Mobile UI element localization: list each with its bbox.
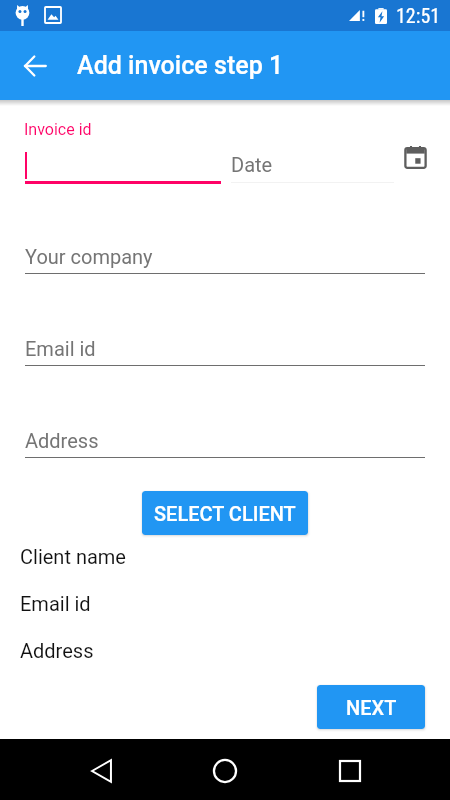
staticText: Email id — [20, 592, 91, 615]
button[interactable]: Your company — [25, 241, 425, 274]
button[interactable]: Address — [25, 425, 425, 458]
staticText: Date — [231, 153, 273, 176]
button[interactable]: Invoice id — [24, 116, 221, 184]
staticText: Address — [20, 639, 94, 662]
staticText: NEXT — [346, 696, 397, 719]
staticText: Add invoice step 1 — [77, 51, 284, 80]
staticText: SELECT CLIENT — [154, 502, 296, 525]
staticText: Client name — [20, 545, 126, 568]
button[interactable]: NEXT — [317, 685, 425, 729]
staticText: Address — [25, 429, 99, 452]
staticText: Email id — [25, 337, 96, 360]
staticText: Invoice id — [24, 120, 92, 139]
button[interactable]: Navigate up — [0, 31, 63, 100]
button[interactable]: Recent apps — [326, 747, 374, 795]
button[interactable]: Email id — [25, 333, 425, 366]
button[interactable]: Home — [201, 747, 249, 795]
button[interactable]: SELECT CLIENT — [142, 491, 308, 535]
staticText: Your company — [25, 245, 153, 268]
staticText: 12:51 — [396, 4, 441, 27]
button[interactable]: Date — [231, 149, 394, 183]
button[interactable]: Pick date — [398, 140, 432, 174]
button[interactable]: Back — [77, 747, 125, 795]
